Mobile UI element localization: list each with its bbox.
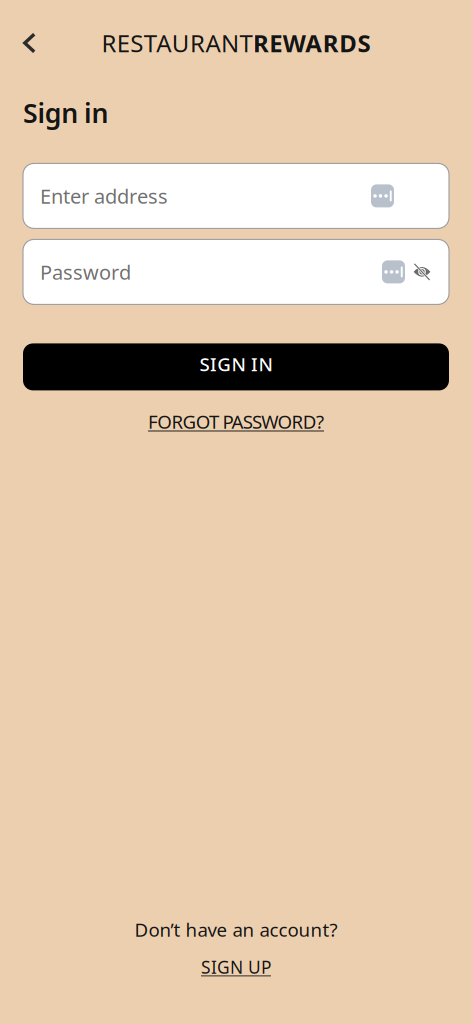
staticText: Don’t have an account?	[134, 917, 337, 942]
button[interactable]: Show password	[413, 265, 431, 278]
staticText: Password	[40, 259, 131, 285]
button[interactable]: SIGN UP	[201, 952, 271, 982]
button[interactable]: Autofill saved password	[382, 260, 405, 283]
staticText: Sign in	[23, 95, 108, 130]
button[interactable]: SIGN IN	[23, 343, 449, 390]
staticText: FORGOT PASSWORD?	[148, 409, 324, 434]
staticText: RESTAURANTREWARDS	[101, 27, 371, 59]
staticText: SIGN IN	[200, 351, 272, 376]
button[interactable]: Back	[23, 27, 53, 59]
button[interactable]: Autofill saved password	[371, 184, 394, 207]
button[interactable]: FORGOT PASSWORD?	[0, 408, 472, 434]
staticText: SIGN UP	[201, 955, 271, 978]
staticText: Enter address	[40, 183, 168, 209]
